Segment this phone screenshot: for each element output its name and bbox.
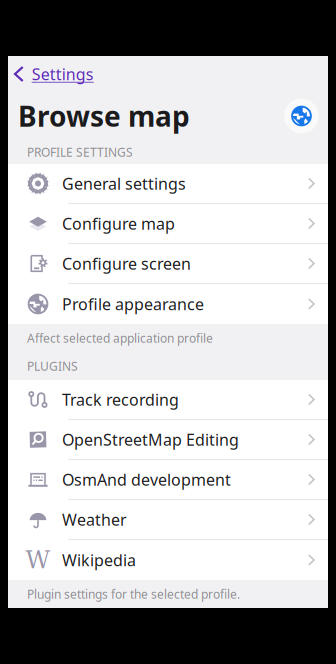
button[interactable]: General settings bbox=[8, 164, 328, 204]
staticText: Configure screen bbox=[62, 253, 191, 274]
staticText: Settings bbox=[32, 63, 94, 85]
button[interactable]: Track recording bbox=[8, 380, 328, 420]
button[interactable]: Settings bbox=[8, 56, 328, 92]
button[interactable]: Profile appearance bbox=[8, 284, 328, 324]
staticText: Plugin settings for the selected profile… bbox=[27, 586, 240, 602]
staticText: Configure map bbox=[62, 213, 175, 234]
staticText: PLUGINS bbox=[27, 358, 78, 374]
button[interactable]: Configure map bbox=[8, 204, 328, 244]
button[interactable]: OpenStreetMap Editing bbox=[8, 420, 328, 460]
button[interactable]: Map source bbox=[284, 98, 319, 133]
staticText: PROFILE SETTINGS bbox=[27, 144, 133, 160]
button[interactable]: W bbox=[8, 540, 328, 580]
button[interactable]: Configure screen bbox=[8, 244, 328, 284]
staticText: Weather bbox=[62, 509, 127, 530]
staticText: Affect selected application profile bbox=[27, 330, 213, 346]
staticText: OsmAnd development bbox=[62, 469, 231, 490]
button[interactable]: OsmAnd development bbox=[8, 460, 328, 500]
staticText: Profile appearance bbox=[62, 293, 204, 315]
staticText: General settings bbox=[62, 173, 186, 194]
staticText: Track recording bbox=[62, 389, 179, 410]
staticText: W bbox=[25, 546, 50, 574]
staticText: Wikipedia bbox=[62, 549, 136, 571]
staticText: Browse map bbox=[18, 97, 190, 135]
staticText: OpenStreetMap Editing bbox=[62, 429, 239, 450]
button[interactable]: Weather bbox=[8, 500, 328, 540]
